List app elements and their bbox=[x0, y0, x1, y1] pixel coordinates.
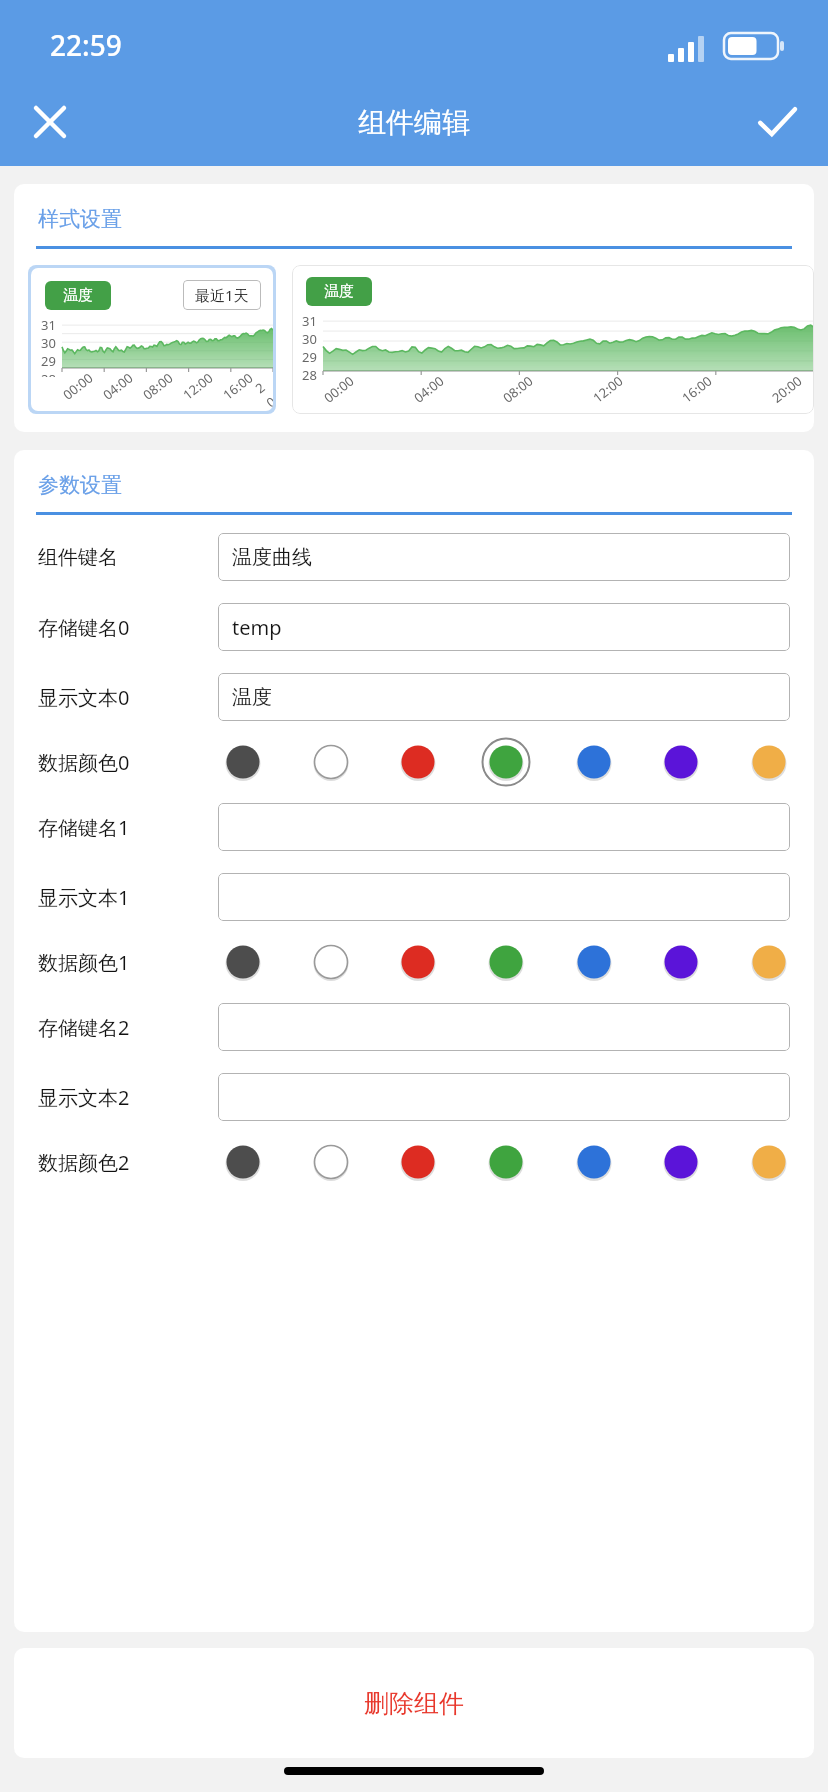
button[interactable]: Color 4 bbox=[569, 937, 619, 987]
staticText: 28 bbox=[302, 366, 317, 380]
staticText: 显示文本2 bbox=[38, 1084, 218, 1111]
button[interactable]: Color 3 bbox=[481, 937, 531, 987]
staticText: 存储键名2 bbox=[38, 1014, 218, 1041]
staticText: 30 bbox=[41, 334, 56, 352]
staticText: 删除组件 bbox=[364, 1688, 464, 1719]
button[interactable]: 温度曲线 bbox=[218, 533, 790, 581]
staticText: 16:00 bbox=[219, 368, 257, 403]
button[interactable]: Color 2 bbox=[393, 937, 443, 987]
button[interactable]: Color 0 bbox=[218, 1137, 268, 1187]
button[interactable]: Color 1 bbox=[306, 737, 356, 787]
button[interactable]: temp bbox=[218, 603, 790, 651]
button[interactable] bbox=[218, 1003, 790, 1051]
staticText: 数据颜色1 bbox=[38, 949, 218, 976]
button[interactable]: 温度 bbox=[218, 673, 790, 721]
button[interactable]: Color 3 bbox=[481, 737, 531, 787]
button[interactable] bbox=[218, 803, 790, 851]
button[interactable]: 温度 bbox=[31, 268, 273, 411]
staticText: 12:00 bbox=[589, 371, 627, 406]
button[interactable]: Color 5 bbox=[656, 1137, 706, 1187]
button[interactable]: Close bbox=[12, 78, 88, 166]
staticText: 温度 bbox=[63, 286, 93, 305]
staticText: 组件键名 bbox=[38, 545, 218, 570]
staticText: 00:00 bbox=[320, 371, 358, 406]
button[interactable]: 删除组件 bbox=[14, 1648, 814, 1758]
staticText: 存储键名0 bbox=[38, 614, 218, 641]
button[interactable]: Color 0 bbox=[218, 737, 268, 787]
button[interactable]: Color 4 bbox=[569, 1137, 619, 1187]
staticText: 20:00 bbox=[768, 371, 806, 406]
staticText: 数据颜色2 bbox=[38, 1149, 218, 1176]
staticText: 温度 bbox=[232, 685, 272, 710]
button[interactable]: Color 6 bbox=[744, 737, 794, 787]
button[interactable]: Color 2 bbox=[393, 1137, 443, 1187]
staticText: 31 bbox=[41, 316, 56, 334]
button[interactable]: Color 6 bbox=[744, 937, 794, 987]
button[interactable]: Color 1 bbox=[306, 1137, 356, 1187]
staticText: 显示文本1 bbox=[38, 884, 218, 911]
staticText: 16:00 bbox=[678, 371, 716, 406]
staticText: 29 bbox=[302, 348, 317, 366]
staticText: 22:59 bbox=[50, 26, 122, 64]
staticText: 31 bbox=[302, 312, 317, 330]
staticText: 数据颜色0 bbox=[38, 749, 218, 776]
staticText: 组件编辑 bbox=[358, 105, 470, 140]
staticText: 20:00 bbox=[251, 378, 273, 410]
staticText: 30 bbox=[302, 330, 317, 348]
button[interactable]: Color 3 bbox=[481, 1137, 531, 1187]
staticText: 样式设置 bbox=[38, 206, 122, 232]
staticText: 温度曲线 bbox=[232, 545, 312, 570]
staticText: temp bbox=[232, 614, 282, 641]
staticText: 温度 bbox=[324, 282, 354, 301]
staticText: 显示文本0 bbox=[38, 684, 218, 711]
button[interactable]: Color 5 bbox=[656, 937, 706, 987]
staticText: 12:00 bbox=[179, 368, 217, 403]
staticText: 08:00 bbox=[499, 371, 537, 406]
button[interactable]: Confirm bbox=[740, 78, 814, 166]
button[interactable]: Color 4 bbox=[569, 737, 619, 787]
button[interactable]: Color 1 bbox=[306, 937, 356, 987]
button[interactable]: Color 6 bbox=[744, 1137, 794, 1187]
button[interactable] bbox=[218, 873, 790, 921]
staticText: 08:00 bbox=[139, 368, 177, 403]
button[interactable]: 温度 bbox=[292, 265, 814, 414]
staticText: 28 bbox=[41, 370, 56, 377]
staticText: 04:00 bbox=[99, 368, 137, 403]
staticText: 29 bbox=[41, 352, 56, 370]
button[interactable] bbox=[218, 1073, 790, 1121]
button[interactable]: Color 5 bbox=[656, 737, 706, 787]
staticText: 存储键名1 bbox=[38, 814, 218, 841]
staticText: 04:00 bbox=[410, 371, 448, 406]
staticText: 参数设置 bbox=[38, 472, 122, 498]
staticText: 最近1天 bbox=[195, 285, 249, 305]
button[interactable]: Color 2 bbox=[393, 737, 443, 787]
button[interactable]: Color 0 bbox=[218, 937, 268, 987]
staticText: 00:00 bbox=[59, 368, 97, 403]
